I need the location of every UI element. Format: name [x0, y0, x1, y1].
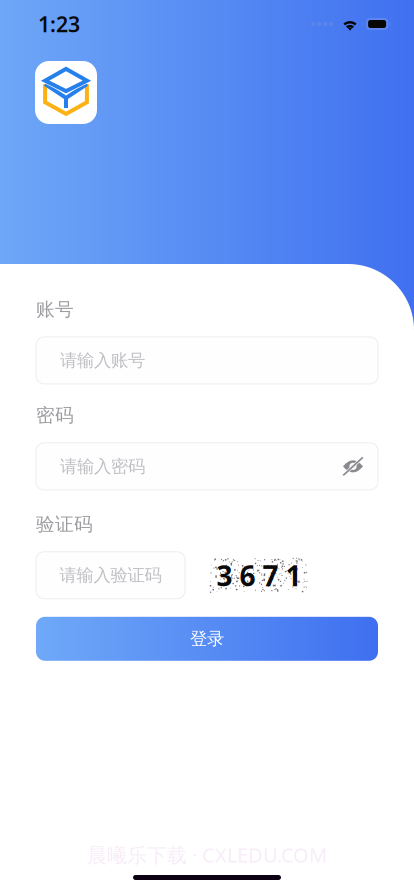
staticText: 请输入验证码 [59, 565, 161, 586]
button[interactable]: Refresh captcha code [208, 552, 310, 598]
staticText: 验证码 [36, 513, 93, 536]
staticText: 3 6 7 1 [216, 557, 301, 594]
staticText: 晨曦乐下载 · CXLEDU.COM [87, 841, 327, 868]
staticText: 请输入账号 [60, 350, 145, 371]
staticText: 登录 [190, 628, 224, 649]
button[interactable]: Show password [342, 456, 364, 476]
staticText: 1:23 [38, 10, 80, 38]
button[interactable]: 登录 [36, 617, 378, 661]
staticText: 账号 [36, 298, 74, 321]
staticText: 密码 [36, 404, 74, 427]
staticText: 请输入密码 [60, 456, 145, 477]
